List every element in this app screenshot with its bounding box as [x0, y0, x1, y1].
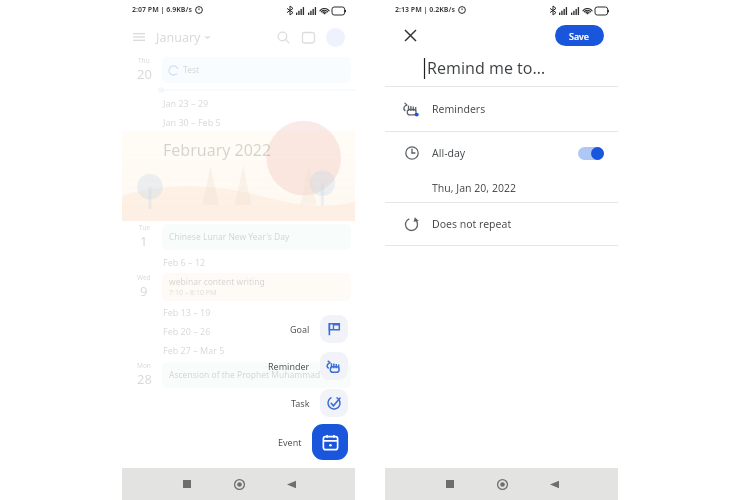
button[interactable]: Recents — [424, 468, 476, 500]
staticText: 1 — [140, 232, 148, 250]
staticText: Jan 23 – 29 — [163, 97, 209, 109]
staticText: 28 — [137, 370, 152, 388]
staticText: Feb 13 – 19 — [163, 306, 211, 318]
button[interactable]: Close — [399, 24, 421, 46]
staticText: Chinese Lunar New Year's Day — [169, 231, 290, 243]
button[interactable]: Home — [213, 468, 265, 500]
staticText: Test — [183, 64, 200, 76]
button[interactable]: Recents — [161, 468, 213, 500]
staticText: January — [156, 29, 201, 46]
staticText: 2:07 PM | 6.9KB/s — [132, 5, 192, 15]
button[interactable]: Reminder — [320, 352, 348, 380]
button[interactable]: Back — [528, 468, 580, 500]
staticText: Task — [291, 397, 310, 409]
button[interactable]: Save — [569, 25, 590, 46]
staticText: 9 — [140, 282, 148, 300]
button[interactable]: Does not repeat — [385, 203, 618, 245]
button[interactable]: Ascension of the Prophet Muhammad — [169, 362, 344, 388]
button[interactable]: All-day — [385, 132, 618, 174]
button[interactable]: Chinese Lunar New Year's Day — [169, 224, 344, 250]
staticText: Thu, Jan 20, 2022 — [432, 181, 516, 195]
staticText: 2:13 PM | 0.2KB/s — [395, 5, 455, 15]
staticText: Jan 30 – Feb 5 — [163, 116, 221, 128]
staticText: Feb 27 – Mar 5 — [163, 344, 225, 356]
staticText: webinar content writing — [169, 276, 265, 288]
staticText: Save — [569, 30, 590, 42]
button[interactable]: Create event — [312, 424, 348, 460]
staticText: Thu — [138, 56, 150, 65]
button[interactable]: Back — [265, 468, 317, 500]
staticText: Event — [278, 436, 302, 448]
button[interactable]: Reminders — [385, 87, 618, 131]
staticText: Reminders — [432, 102, 486, 116]
staticText: All-day — [432, 146, 466, 160]
staticText: Reminder — [268, 360, 310, 372]
button[interactable]: Task — [320, 389, 348, 417]
button[interactable]: Test — [169, 57, 344, 83]
button[interactable]: Goal — [320, 315, 348, 343]
staticText: Does not repeat — [432, 217, 512, 231]
button[interactable]: Home — [476, 468, 528, 500]
staticText: Remind me to… — [427, 57, 546, 79]
button[interactable]: webinar content writing — [169, 275, 344, 299]
staticText: 7:10 – 8:10 PM — [169, 288, 217, 298]
staticText: Tue — [139, 223, 150, 232]
staticText: Feb 6 – 12 — [163, 256, 206, 268]
staticText: Wed — [137, 273, 151, 282]
staticText: Feb 20 – 26 — [163, 325, 211, 337]
button[interactable]: Thu, Jan 20, 2022 — [432, 174, 618, 202]
staticText: 20 — [137, 65, 152, 83]
staticText: Goal — [290, 323, 310, 335]
staticText: February 2022 — [163, 139, 272, 161]
staticText: Mon — [137, 361, 151, 370]
staticText: Ascension of the Prophet Muhammad — [169, 369, 321, 381]
